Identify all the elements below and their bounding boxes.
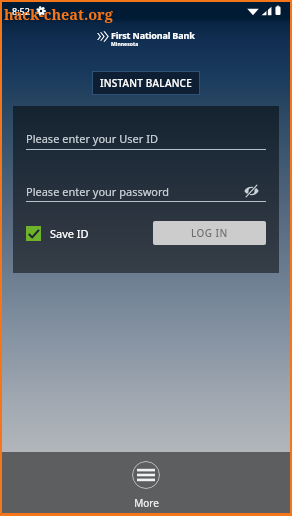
staticText: First National Bank: [111, 29, 195, 41]
button[interactable]: Save ID: [26, 226, 89, 241]
staticText: 8:52: [12, 5, 30, 17]
staticText: Please enter your password: [26, 184, 170, 199]
staticText: LOG IN: [191, 226, 228, 240]
staticText: hack-cheat.org: [4, 4, 113, 24]
staticText: Save ID: [50, 226, 89, 241]
button[interactable]: Show password: [244, 182, 266, 200]
staticText: Please enter your User ID: [26, 131, 158, 146]
button[interactable]: LOG IN: [153, 221, 266, 245]
button[interactable]: More: [2, 452, 290, 513]
staticText: More: [134, 496, 159, 510]
button[interactable]: INSTANT BALANCE: [92, 71, 200, 95]
staticText: Minnesota: [111, 41, 139, 47]
staticText: INSTANT BALANCE: [100, 76, 192, 90]
